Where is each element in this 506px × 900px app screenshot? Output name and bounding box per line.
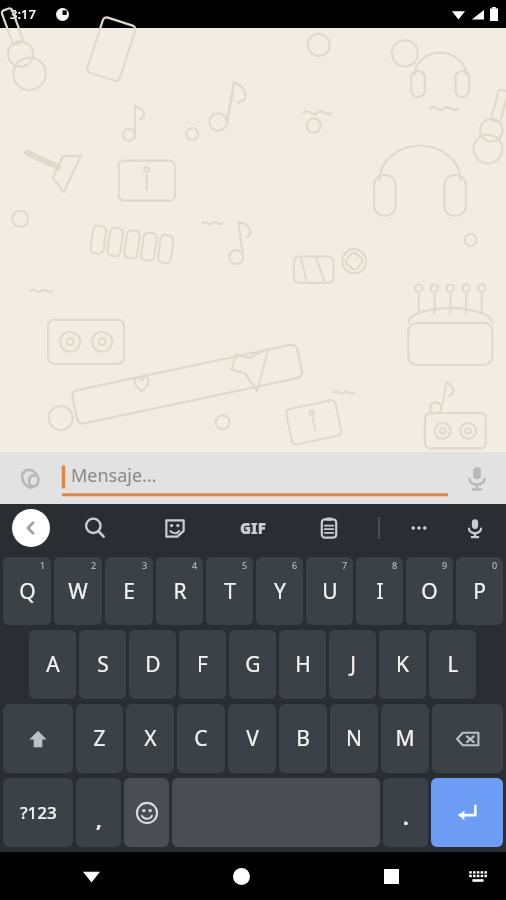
button[interactable]: M bbox=[381, 704, 429, 773]
button[interactable]: Q bbox=[3, 557, 51, 625]
staticText: W bbox=[68, 577, 88, 606]
staticText: 4 bbox=[192, 559, 198, 571]
button[interactable]: ?123 bbox=[3, 778, 73, 847]
staticText: L bbox=[447, 650, 459, 679]
staticText: ?123 bbox=[20, 801, 57, 824]
staticText: 1 bbox=[40, 559, 46, 571]
button[interactable]: GIF bbox=[236, 511, 270, 545]
staticText: 7 bbox=[342, 559, 348, 571]
button[interactable]: Switch keyboard bbox=[456, 854, 500, 898]
button[interactable]: J bbox=[329, 630, 376, 699]
button[interactable]: T bbox=[206, 557, 253, 625]
button[interactable]: Hide keyboard bbox=[67, 852, 115, 900]
button[interactable]: B bbox=[279, 704, 327, 773]
button[interactable]: Clipboard bbox=[312, 511, 346, 545]
staticText: Mensaje... bbox=[71, 463, 157, 488]
button[interactable]: U bbox=[306, 557, 353, 625]
staticText: Q bbox=[19, 577, 36, 606]
button[interactable]: Home bbox=[217, 852, 265, 900]
staticText: 0 bbox=[492, 559, 498, 571]
staticText: J bbox=[350, 650, 356, 679]
staticText: 8 bbox=[392, 559, 398, 571]
button[interactable]: P bbox=[456, 557, 503, 625]
button[interactable]: H bbox=[279, 630, 326, 699]
staticText: S bbox=[97, 650, 109, 679]
staticText: E bbox=[123, 577, 135, 606]
button[interactable]: Recent apps bbox=[367, 852, 415, 900]
staticText: B bbox=[296, 724, 310, 753]
staticText: H bbox=[295, 650, 311, 679]
button[interactable]: Z bbox=[76, 704, 123, 773]
staticText: F bbox=[197, 650, 208, 679]
button[interactable]: Stickers bbox=[158, 511, 192, 545]
staticText: T bbox=[224, 577, 236, 606]
button[interactable]: F bbox=[179, 630, 226, 699]
staticText: X bbox=[144, 724, 157, 753]
staticText: V bbox=[246, 724, 259, 753]
staticText: O bbox=[421, 577, 438, 606]
staticText: GIF bbox=[240, 518, 266, 538]
staticText: A bbox=[46, 650, 60, 679]
button[interactable]: Voice input bbox=[458, 511, 492, 545]
button[interactable]: Mensaje... bbox=[62, 452, 448, 504]
staticText: U bbox=[322, 577, 338, 606]
button[interactable]: A bbox=[29, 630, 76, 699]
button[interactable]: Back bbox=[12, 509, 50, 547]
button[interactable]: Backspace bbox=[432, 704, 503, 773]
staticText: 5 bbox=[242, 559, 248, 571]
button[interactable]: Voice message bbox=[448, 452, 506, 504]
button[interactable]: , bbox=[76, 778, 121, 847]
staticText: 6 bbox=[292, 559, 298, 571]
button[interactable]: . bbox=[383, 778, 428, 847]
staticText: 9 bbox=[442, 559, 448, 571]
button[interactable]: Attach file bbox=[0, 452, 62, 504]
button[interactable]: N bbox=[330, 704, 378, 773]
button[interactable]: I bbox=[356, 557, 403, 625]
staticText: , bbox=[96, 806, 102, 833]
button[interactable]: More options bbox=[402, 511, 436, 545]
button[interactable]: Emoji bbox=[124, 778, 169, 847]
button[interactable]: Search bbox=[78, 511, 112, 545]
staticText: G bbox=[245, 650, 261, 679]
staticText: 3:17 bbox=[10, 5, 36, 23]
staticText: D bbox=[145, 650, 161, 679]
staticText: P bbox=[473, 577, 486, 606]
button[interactable]: S bbox=[79, 630, 126, 699]
button[interactable]: C bbox=[177, 704, 225, 773]
staticText: Z bbox=[93, 724, 106, 753]
button[interactable]: Enter bbox=[431, 778, 503, 847]
staticText: N bbox=[346, 724, 362, 753]
staticText: R bbox=[173, 577, 187, 606]
button[interactable]: W bbox=[54, 557, 102, 625]
button[interactable]: X bbox=[126, 704, 174, 773]
button[interactable]: L bbox=[429, 630, 476, 699]
staticText: Y bbox=[274, 577, 286, 606]
button[interactable]: K bbox=[379, 630, 426, 699]
button[interactable]: Y bbox=[256, 557, 303, 625]
button[interactable]: V bbox=[228, 704, 276, 773]
button[interactable]: R bbox=[156, 557, 203, 625]
staticText: I bbox=[376, 577, 384, 606]
button[interactable]: D bbox=[129, 630, 176, 699]
button[interactable]: Shift bbox=[3, 704, 73, 773]
staticText: 3 bbox=[142, 559, 148, 571]
staticText: M bbox=[395, 724, 415, 753]
staticText: C bbox=[194, 724, 208, 753]
button[interactable]: G bbox=[229, 630, 276, 699]
staticText: K bbox=[396, 650, 409, 679]
button[interactable]: E bbox=[105, 557, 153, 625]
staticText: 2 bbox=[91, 559, 97, 571]
staticText: . bbox=[403, 804, 409, 831]
button[interactable]: O bbox=[406, 557, 453, 625]
